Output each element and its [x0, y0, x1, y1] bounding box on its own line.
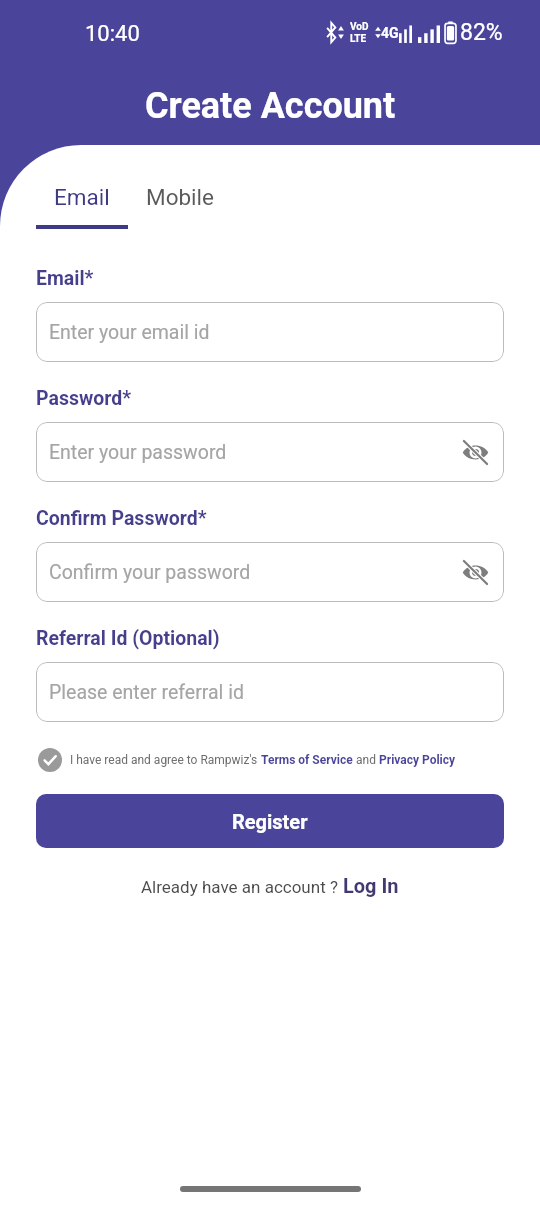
staticText: Create Account [145, 85, 396, 127]
staticText: and [353, 753, 379, 767]
button[interactable]: Confirm your password [36, 542, 504, 602]
button[interactable]: Terms of Service [261, 753, 353, 767]
button[interactable]: Enter your email id [36, 302, 504, 362]
button[interactable]: Mobile [134, 184, 226, 229]
staticText: VoD [350, 21, 369, 33]
staticText: Referral Id (Optional) [36, 627, 220, 650]
button[interactable]: Register [36, 794, 504, 848]
staticText: Mobile [146, 184, 214, 210]
staticText: Confirm Password* [36, 507, 207, 530]
staticText: Email [54, 184, 110, 210]
staticText: 82% [460, 19, 503, 46]
button[interactable]: Log In [343, 874, 399, 897]
staticText: Please enter referral id [49, 681, 244, 704]
staticText: Already have an account ? [141, 877, 343, 897]
button[interactable]: Toggle password visibility [461, 560, 490, 585]
button[interactable]: Email [36, 184, 128, 229]
staticText: Confirm your password [49, 561, 251, 584]
button[interactable]: Privacy Policy [379, 753, 456, 767]
button[interactable]: Enter your password [36, 422, 504, 482]
staticText: I have read and agree to Rampwiz's [70, 753, 261, 767]
staticText: 10:40 [85, 21, 140, 47]
button[interactable]: I have read and agree to Rampwiz's [38, 748, 456, 772]
button[interactable]: Toggle password visibility [461, 440, 490, 465]
staticText: Enter your password [49, 441, 227, 464]
staticText: Register [232, 810, 308, 833]
staticText: Enter your email id [49, 321, 210, 344]
staticText: Email* [36, 267, 94, 290]
staticText: Password* [36, 387, 132, 410]
button[interactable]: Please enter referral id [36, 662, 504, 722]
staticText: 4G [381, 25, 399, 41]
staticText: LTE [350, 33, 367, 45]
